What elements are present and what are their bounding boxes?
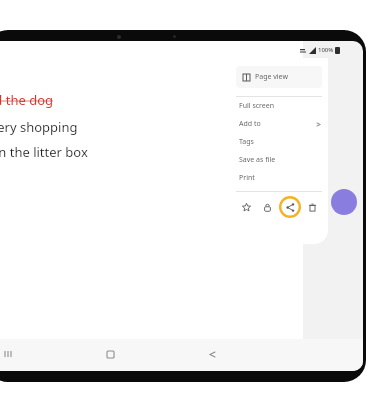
button[interactable]: Page view [236, 66, 322, 88]
button[interactable]: Add to [230, 115, 328, 133]
button[interactable]: Print [230, 169, 328, 187]
button[interactable]: Add note [331, 189, 357, 215]
staticText: ed the dog [0, 91, 54, 109]
staticText: an the litter box [0, 143, 88, 161]
button[interactable]: Delete [302, 197, 322, 217]
staticText: cery shopping [0, 118, 78, 136]
staticText: Full screen [239, 101, 275, 111]
staticText: Tags [239, 137, 254, 147]
button[interactable]: Tags [230, 133, 328, 151]
button[interactable]: Lock [257, 197, 277, 217]
button[interactable]: Full screen [230, 97, 328, 115]
staticText: Page view [255, 72, 288, 82]
button[interactable]: Home [101, 345, 119, 363]
button[interactable]: Back [203, 345, 221, 363]
staticText: Add to [239, 119, 261, 129]
staticText: 100% [318, 46, 334, 54]
staticText: Print [239, 173, 255, 183]
staticText: Save as file [239, 155, 276, 165]
button[interactable]: Save as file [230, 151, 328, 169]
button[interactable]: Share [279, 196, 301, 218]
button[interactable]: Recents [0, 345, 17, 363]
button[interactable]: Favorite [236, 197, 256, 217]
